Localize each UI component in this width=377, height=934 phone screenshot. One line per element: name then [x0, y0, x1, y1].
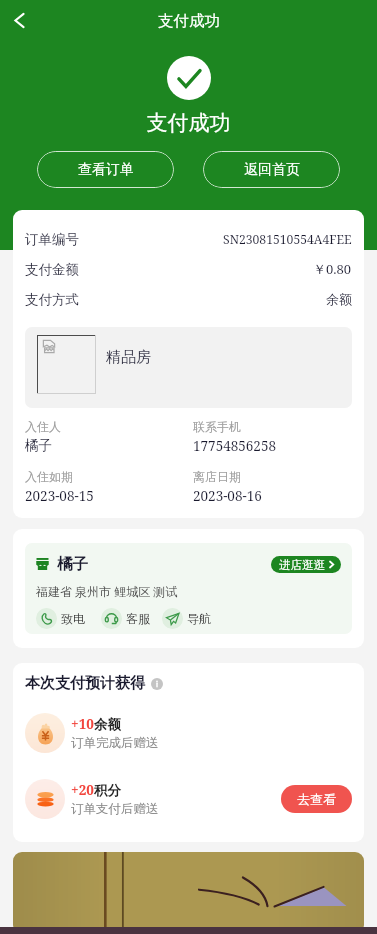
staticText: 离店日期: [193, 469, 241, 484]
staticText: 支付金额: [25, 261, 79, 278]
staticText: 订单完成后赠送: [71, 735, 159, 751]
staticText: 客服: [126, 611, 150, 626]
staticText: 导航: [187, 611, 211, 626]
staticText: +20: [71, 781, 94, 799]
button[interactable]: Promotion banner: [13, 852, 364, 934]
button[interactable]: 查看订单: [37, 151, 174, 188]
staticText: 订单支付后赠送: [71, 801, 159, 817]
staticText: 17754856258: [193, 437, 277, 455]
button[interactable]: 客服: [101, 608, 150, 629]
staticText: 进店逛逛: [279, 558, 325, 572]
staticText: 支付成功: [158, 11, 220, 31]
staticText: 支付成功: [0, 110, 377, 136]
staticText: 2023-08-16: [193, 487, 262, 505]
staticText: 橘子: [25, 437, 52, 454]
staticText: 福建省 泉州市 鲤城区 测试: [36, 583, 178, 599]
button[interactable]: 导航: [162, 608, 211, 629]
staticText: 本次支付预计获得: [25, 674, 145, 693]
staticText: 入住如期: [25, 469, 73, 484]
staticText: 余额: [326, 291, 352, 307]
staticText: 余额: [94, 716, 121, 733]
staticText: 精品房: [106, 348, 151, 367]
staticText: 联系手机: [193, 419, 241, 434]
staticText: +10: [71, 715, 94, 733]
staticText: 去查看: [297, 791, 336, 807]
staticText: 2023-08-15: [25, 487, 94, 505]
staticText: 订单编号: [25, 231, 79, 248]
staticText: 返回首页: [244, 161, 300, 179]
button[interactable]: 致电: [36, 608, 85, 629]
staticText: SN23081510554A4FEE: [223, 231, 352, 248]
staticText: 致电: [61, 611, 85, 626]
button[interactable]: 去查看: [281, 785, 352, 813]
staticText: 入住人: [25, 419, 61, 434]
staticText: ￥0.80: [313, 260, 352, 278]
staticText: 支付方式: [25, 291, 79, 308]
staticText: 查看订单: [78, 161, 134, 179]
button[interactable]: 进店逛逛: [271, 556, 341, 573]
button[interactable]: Back: [0, 1, 39, 40]
staticText: 积分: [94, 782, 121, 799]
button[interactable]: 返回首页: [203, 151, 340, 188]
staticText: 橘子: [57, 554, 88, 574]
